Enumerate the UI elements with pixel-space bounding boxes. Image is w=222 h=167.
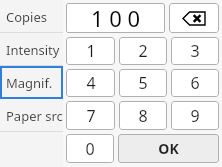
staticText: 0 [85, 138, 95, 160]
button[interactable]: Backspace [169, 3, 219, 33]
staticText: Copies [6, 8, 47, 26]
button[interactable]: Magnif. [0, 66, 63, 99]
button[interactable]: 5 [119, 69, 167, 97]
staticText: 1 [86, 40, 96, 62]
staticText: Paper src [6, 107, 63, 125]
button[interactable]: 4 [66, 69, 115, 97]
staticText: 7 [86, 105, 96, 127]
staticText: 4 [86, 72, 96, 94]
button[interactable]: 0 [66, 134, 114, 163]
button[interactable]: 6 [171, 69, 219, 97]
button[interactable]: 3 [171, 37, 219, 65]
button[interactable]: Paper src [0, 99, 63, 132]
staticText: 2 [138, 40, 148, 62]
button[interactable]: 1 [66, 37, 115, 65]
button[interactable]: OK [118, 134, 219, 163]
staticText: 3 [190, 40, 200, 62]
staticText: Intensity [6, 41, 60, 59]
button[interactable]: Copies [0, 0, 63, 33]
button[interactable]: 8 [119, 101, 167, 130]
staticText: OK [158, 139, 179, 158]
staticText: 8 [138, 105, 148, 127]
staticText: Magnif. [6, 74, 53, 92]
staticText: 6 [190, 72, 200, 94]
button[interactable]: Intensity [0, 33, 63, 66]
staticText: 1 0 0 [91, 3, 141, 33]
button[interactable]: 7 [66, 101, 115, 130]
button[interactable]: 9 [171, 101, 219, 130]
button[interactable]: 2 [119, 37, 167, 65]
staticText: 9 [190, 105, 200, 127]
staticText: 5 [138, 72, 148, 94]
